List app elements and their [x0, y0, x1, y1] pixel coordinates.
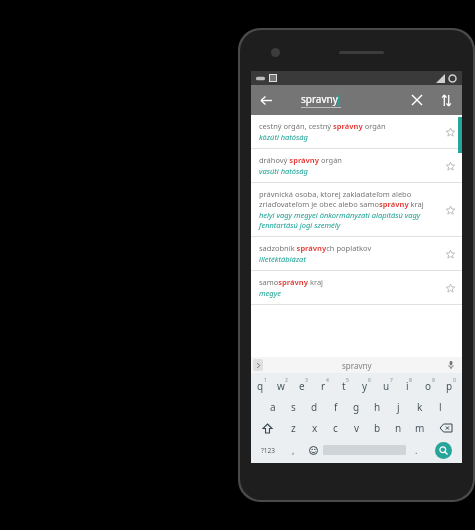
button[interactable]: Voice input: [445, 359, 457, 371]
button[interactable]: d: [304, 396, 325, 417]
staticText: g: [353, 400, 360, 414]
button[interactable]: Add to favourites: [442, 246, 458, 262]
staticText: s: [291, 400, 296, 414]
button[interactable]: l: [430, 396, 451, 417]
staticText: 9: [432, 377, 435, 384]
staticText: i: [406, 379, 409, 393]
staticText: megye: [259, 288, 281, 298]
staticText: q: [257, 379, 264, 393]
staticText: o: [425, 379, 432, 393]
staticText: b: [374, 421, 381, 435]
staticText: ?123: [261, 446, 275, 455]
button[interactable]: Swap languages: [434, 88, 458, 112]
button[interactable]: Back: [254, 88, 278, 112]
staticText: 2: [285, 377, 288, 384]
staticText: právnická osoba, ktorej zakladateľom ale…: [259, 189, 442, 209]
button[interactable]: Add to favourites: [442, 280, 458, 296]
button[interactable]: cestný orgán, cestný správny orgán: [251, 115, 462, 148]
button[interactable]: r: [314, 375, 335, 396]
staticText: z: [291, 421, 296, 435]
staticText: 7: [390, 377, 393, 384]
staticText: l: [439, 400, 442, 414]
staticText: j: [397, 400, 400, 414]
button[interactable]: p: [440, 375, 461, 396]
button[interactable]: a: [262, 396, 283, 417]
button[interactable]: v: [346, 417, 367, 439]
staticText: helyi vagy megyei önkormányzati alapítás…: [259, 210, 442, 230]
button[interactable]: g: [346, 396, 367, 417]
button[interactable]: .: [406, 439, 426, 461]
button[interactable]: Add to favourites: [442, 158, 458, 174]
button[interactable]: h: [367, 396, 388, 417]
staticText: k: [417, 400, 423, 414]
staticText: dráhový správny orgán: [259, 155, 342, 165]
staticText: f: [334, 400, 338, 414]
staticText: illetéktáblázat: [259, 254, 306, 264]
staticText: samosprávny kraj: [259, 277, 324, 287]
button[interactable]: sadzobník správnych poplatkov: [251, 237, 462, 270]
button[interactable]: ?123: [252, 439, 283, 461]
staticText: közúti hatóság: [259, 132, 308, 142]
button[interactable]: právnická osoba, ktorej zakladateľom ale…: [251, 183, 462, 236]
staticText: 4: [326, 377, 329, 384]
button[interactable]: Search: [435, 442, 452, 459]
staticText: y: [362, 379, 368, 393]
staticText: p: [446, 379, 453, 393]
staticText: x: [312, 421, 318, 435]
button[interactable]: x: [304, 417, 325, 439]
button[interactable]: Add to favourites: [442, 202, 458, 218]
button[interactable]: f: [325, 396, 346, 417]
staticText: a: [270, 400, 276, 414]
staticText: u: [383, 379, 390, 393]
staticText: t: [342, 379, 346, 393]
button[interactable]: w: [272, 375, 293, 396]
button[interactable]: ,: [283, 439, 303, 461]
button[interactable]: z: [283, 417, 304, 439]
staticText: h: [374, 400, 381, 414]
button[interactable]: u: [377, 375, 398, 396]
button[interactable]: n: [388, 417, 409, 439]
button[interactable]: s: [283, 396, 304, 417]
staticText: 5: [346, 377, 349, 384]
button[interactable]: m: [409, 417, 430, 439]
staticText: spravny: [301, 92, 338, 106]
button[interactable]: Backspace: [430, 417, 461, 439]
button[interactable]: b: [367, 417, 388, 439]
staticText: 8: [409, 377, 412, 384]
button[interactable]: More suggestions: [253, 359, 263, 371]
button[interactable]: q: [252, 375, 272, 396]
button[interactable]: Emoji: [303, 439, 323, 461]
staticText: 1: [264, 377, 267, 384]
button[interactable]: t: [335, 375, 356, 396]
button[interactable]: k: [409, 396, 430, 417]
staticText: 6: [368, 377, 371, 384]
button[interactable]: Clear: [405, 88, 429, 112]
button[interactable]: c: [325, 417, 346, 439]
button[interactable]: Shift: [252, 417, 283, 439]
staticText: n: [395, 421, 402, 435]
button[interactable]: Add to favourites: [442, 124, 458, 140]
button[interactable]: j: [388, 396, 409, 417]
staticText: d: [311, 400, 318, 414]
staticText: 0: [453, 377, 456, 384]
button[interactable]: dráhový správny orgán: [251, 149, 462, 182]
staticText: vasúti hatóság: [259, 166, 308, 176]
staticText: cestný orgán, cestný správny orgán: [259, 121, 386, 131]
button[interactable]: i: [398, 375, 419, 396]
staticText: e: [299, 379, 305, 393]
staticText: sadzobník správnych poplatkov: [259, 243, 372, 253]
button[interactable]: o: [419, 375, 440, 396]
button[interactable]: e: [293, 375, 314, 396]
staticText: ,: [292, 444, 295, 456]
staticText: 3: [305, 377, 308, 384]
staticText: w: [277, 379, 285, 393]
button[interactable]: samosprávny kraj: [251, 271, 462, 304]
staticText: spravny: [342, 360, 372, 371]
staticText: .: [415, 444, 418, 456]
staticText: r: [321, 379, 326, 393]
staticText: v: [354, 421, 360, 435]
button[interactable]: y: [356, 375, 377, 396]
staticText: m: [415, 421, 425, 435]
staticText: c: [333, 421, 338, 435]
